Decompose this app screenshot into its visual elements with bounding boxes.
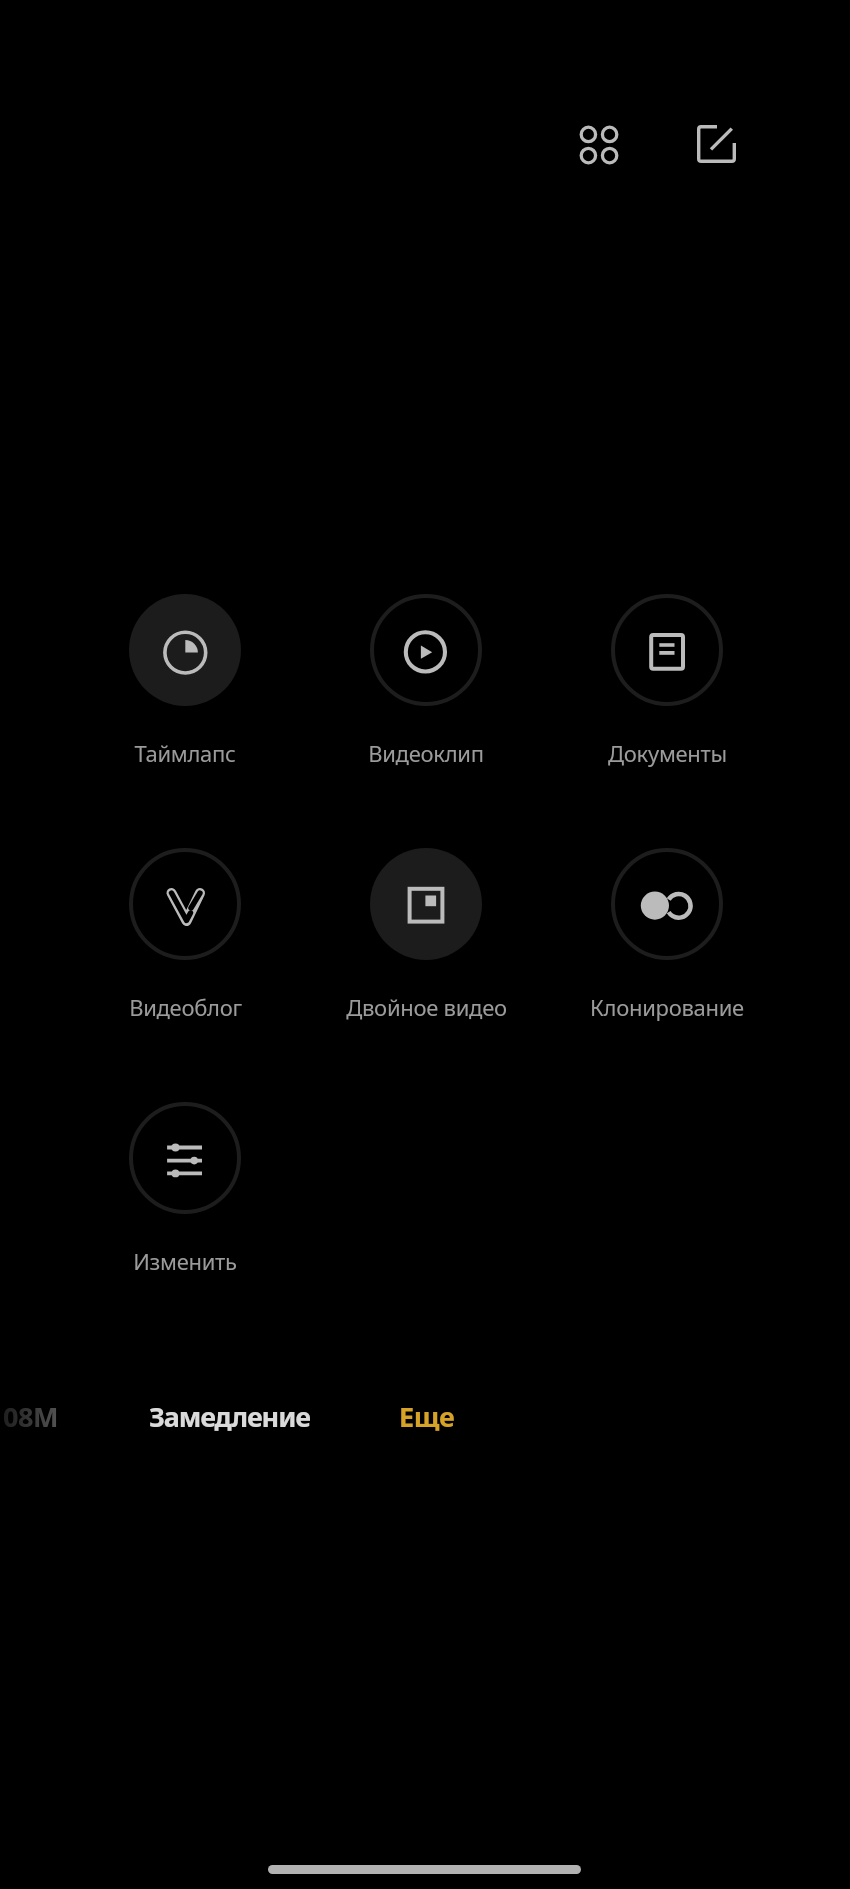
- button[interactable]: Изменить: [97, 1102, 273, 1276]
- button[interactable]: Двойное видео: [338, 848, 514, 1022]
- button[interactable]: Видеоблог: [97, 848, 273, 1022]
- staticText: Еще: [399, 1398, 455, 1435]
- staticText: Видеоклип: [368, 738, 484, 768]
- button[interactable]: All modes: [569, 115, 629, 175]
- button[interactable]: 08М: [0, 1393, 79, 1439]
- staticText: Видеоблог: [129, 992, 242, 1022]
- button[interactable]: Документы: [579, 594, 755, 768]
- staticText: Документы: [608, 738, 727, 768]
- button[interactable]: Таймлапс: [97, 594, 273, 768]
- button[interactable]: Видеоклип: [338, 594, 514, 768]
- button[interactable]: Edit modes: [687, 115, 747, 175]
- button[interactable]: Замедление: [127, 1393, 331, 1439]
- button[interactable]: Клонирование: [579, 848, 755, 1022]
- staticText: Клонирование: [590, 992, 744, 1022]
- staticText: Замедление: [149, 1398, 310, 1435]
- staticText: Двойное видео: [346, 992, 507, 1022]
- staticText: 08М: [3, 1398, 58, 1435]
- staticText: Изменить: [133, 1246, 237, 1276]
- button[interactable]: Еще: [378, 1393, 475, 1439]
- staticText: Таймлапс: [134, 738, 236, 768]
